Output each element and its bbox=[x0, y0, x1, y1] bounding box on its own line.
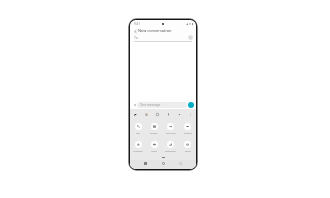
button[interactable]: Keyboard tool 4 bbox=[177, 112, 182, 117]
button[interactable]: Back bbox=[178, 161, 183, 166]
button[interactable]: Location bbox=[130, 138, 146, 155]
button[interactable]: Back bbox=[132, 28, 138, 34]
button[interactable]: Keyboard tool 3 bbox=[166, 112, 171, 117]
button[interactable]: Add contact bbox=[188, 35, 193, 40]
staticText: Voice bbox=[151, 149, 157, 152]
button[interactable]: Keyboard tool 1 bbox=[144, 112, 149, 117]
staticText: Photos bbox=[184, 131, 192, 134]
button[interactable]: More bbox=[179, 138, 196, 155]
staticText: New conversation bbox=[138, 28, 172, 33]
button[interactable]: Send bbox=[188, 102, 194, 108]
button[interactable]: Keyboard bbox=[162, 138, 179, 155]
button[interactable]: Voice bbox=[146, 138, 162, 155]
staticText: GIF bbox=[136, 131, 140, 134]
button[interactable]: Recents bbox=[143, 161, 148, 166]
button[interactable]: Home bbox=[161, 161, 166, 166]
staticText: Location bbox=[133, 149, 143, 152]
staticText: Keyboard bbox=[165, 149, 176, 152]
button[interactable]: Keyboard tool 5 bbox=[188, 112, 193, 117]
button[interactable]: GIF bbox=[130, 120, 146, 137]
staticText: 9:41 bbox=[134, 22, 140, 26]
button[interactable]: Emoji kit bbox=[162, 120, 179, 137]
button[interactable]: Keyboard tool 0 bbox=[133, 112, 138, 117]
button[interactable]: Sticker bbox=[146, 120, 162, 137]
staticText: Sticker bbox=[150, 131, 158, 134]
staticText: Emoji kit bbox=[166, 131, 176, 134]
button[interactable]: Keyboard tool 2 bbox=[155, 112, 160, 117]
staticText: To bbox=[134, 35, 138, 40]
button[interactable]: Photos bbox=[179, 120, 196, 137]
button[interactable]: Text message bbox=[137, 102, 187, 108]
staticText: More bbox=[185, 149, 191, 152]
button[interactable]: Add attachment bbox=[132, 102, 137, 107]
staticText: Text message bbox=[140, 103, 161, 107]
